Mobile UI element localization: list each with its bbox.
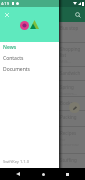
button[interactable]: Books bbox=[0, 97, 85, 111]
button[interactable]: Shopping list bbox=[0, 43, 85, 67]
button[interactable]: Spring bbox=[0, 81, 85, 97]
staticText: Recipes bbox=[60, 130, 77, 136]
staticText: Spring bbox=[60, 84, 74, 90]
button[interactable]: Stuffing bbox=[0, 154, 85, 174]
button[interactable]: Sandwich bbox=[0, 67, 85, 81]
button[interactable]: Recipes bbox=[0, 127, 85, 154]
staticText: Documents bbox=[3, 66, 30, 73]
staticText: Stuffing bbox=[60, 157, 77, 163]
staticText: Packing bbox=[60, 114, 77, 120]
button[interactable]: Contacts bbox=[0, 53, 59, 64]
staticText: Books bbox=[60, 100, 73, 106]
staticText: News bbox=[3, 44, 17, 51]
button[interactable]: Bus stop bbox=[0, 22, 85, 43]
staticText: Shopping list bbox=[60, 46, 85, 58]
staticText: 4:19 bbox=[1, 1, 9, 6]
button[interactable]: Packing bbox=[0, 111, 85, 127]
staticText: SwiftKey 1.1.0 bbox=[3, 159, 29, 164]
staticText: Milk... bbox=[60, 59, 72, 64]
staticText: Bus stop bbox=[60, 25, 79, 31]
staticText: Sandwich bbox=[60, 70, 81, 76]
button[interactable]: Documents bbox=[0, 64, 59, 75]
button[interactable]: Recents bbox=[60, 168, 74, 180]
button[interactable]: Home bbox=[36, 168, 50, 180]
button[interactable]: Close bbox=[1, 9, 12, 20]
button[interactable]: News bbox=[0, 42, 59, 53]
button[interactable]: Back bbox=[11, 168, 25, 180]
button[interactable]: Search bbox=[73, 10, 83, 20]
staticText: flowers... bbox=[60, 91, 77, 96]
staticText: Contacts bbox=[3, 55, 24, 62]
staticText: for tomorrow bbox=[60, 137, 85, 147]
button[interactable]: Create note bbox=[69, 102, 80, 113]
